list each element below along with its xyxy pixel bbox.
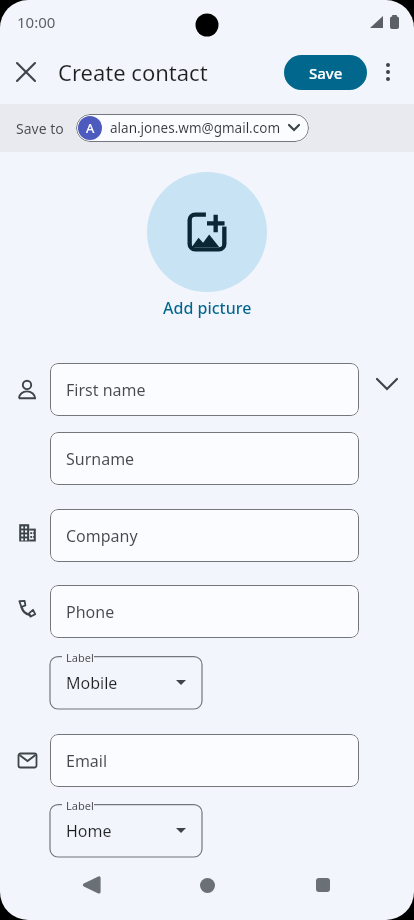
staticText: Home (66, 820, 112, 842)
button[interactable]: A (76, 114, 309, 142)
staticText: Label (66, 650, 94, 665)
staticText: Save (309, 63, 343, 83)
staticText: A (86, 119, 95, 137)
staticText: Email (66, 750, 108, 772)
button[interactable]: Home (50, 804, 202, 857)
button[interactable] (33, 850, 149, 920)
button[interactable] (147, 172, 267, 292)
button[interactable] (6, 52, 46, 92)
button[interactable] (265, 850, 381, 920)
button[interactable]: Save (284, 55, 367, 90)
staticText: Phone (66, 601, 115, 623)
staticText: Create contact (58, 57, 208, 87)
button[interactable]: Mobile (50, 656, 202, 709)
button[interactable]: First name (50, 363, 359, 416)
staticText: 10:00 (17, 12, 56, 32)
button[interactable]: Email (50, 734, 359, 787)
button[interactable]: Surname (50, 432, 359, 485)
button[interactable] (149, 850, 265, 920)
staticText: Company (66, 525, 138, 547)
staticText: First name (66, 379, 146, 401)
button[interactable] (368, 52, 408, 92)
button[interactable] (371, 373, 403, 396)
staticText: Mobile (66, 672, 118, 694)
staticText: Add picture (163, 297, 252, 319)
staticText: Surname (66, 448, 135, 470)
button[interactable]: Phone (50, 585, 359, 638)
staticText: alan.jones.wm@gmail.com (110, 119, 281, 137)
button[interactable]: Add picture (159, 293, 256, 323)
button[interactable]: Company (50, 509, 359, 562)
staticText: Label (66, 798, 94, 813)
staticText: Save to (16, 119, 64, 138)
